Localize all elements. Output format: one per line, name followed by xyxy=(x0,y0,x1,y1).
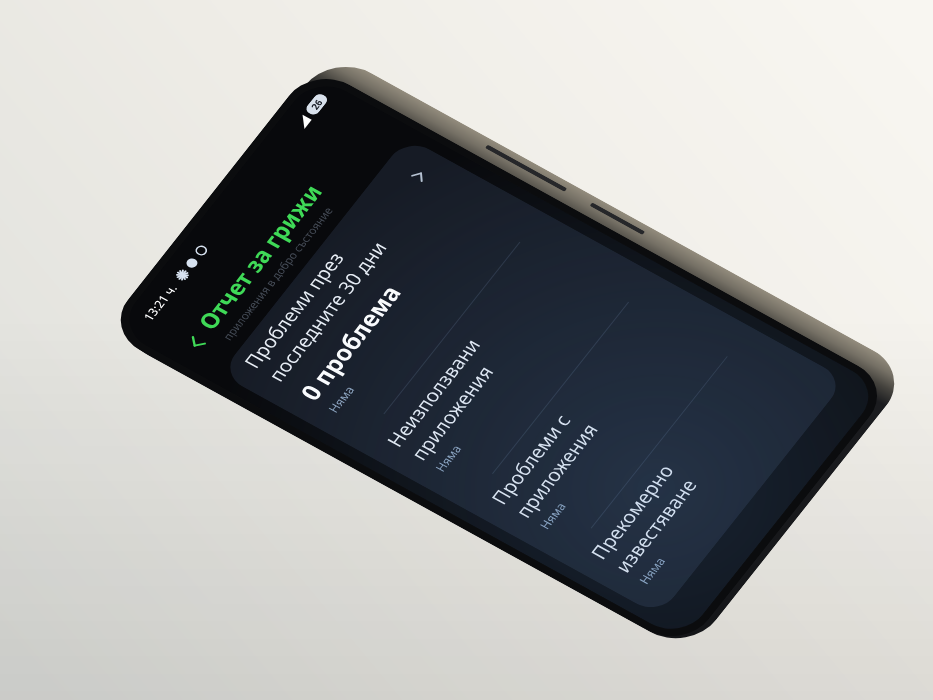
staticText: Няма xyxy=(324,383,358,415)
staticText: Няма xyxy=(635,554,669,587)
staticText: Няма xyxy=(431,442,465,474)
staticText: приложения xyxy=(405,361,501,465)
staticText: 13:21 ч. xyxy=(139,281,181,324)
button[interactable]: Прекомерно xyxy=(568,329,855,621)
staticText: Проблеми през xyxy=(238,247,351,373)
staticText: Отчет за грижи xyxy=(190,179,329,335)
staticText: приложения в добро състояние xyxy=(219,204,336,342)
button[interactable]: Проблеми през xyxy=(219,137,544,449)
staticText: Неизползвани xyxy=(380,334,487,452)
staticText: последните 30 дни xyxy=(262,237,394,386)
staticText: 26 xyxy=(308,97,326,112)
staticText: известяване xyxy=(608,475,703,577)
button[interactable]: Назад xyxy=(174,324,218,361)
button[interactable]: Проблеми с xyxy=(468,274,755,566)
button[interactable]: Неизползвани xyxy=(364,217,651,508)
staticText: 0 проблема xyxy=(292,279,408,405)
staticText: приложения xyxy=(509,418,605,522)
staticText: Прекомерно xyxy=(584,460,680,564)
staticText: Няма xyxy=(536,499,570,532)
staticText: Проблеми с xyxy=(485,409,578,509)
